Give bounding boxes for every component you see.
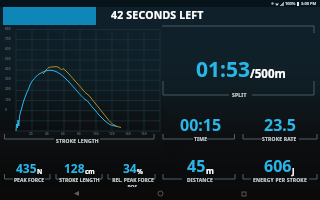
staticText: 800	[5, 27, 11, 31]
staticText: 140	[125, 132, 131, 136]
staticText: J	[292, 165, 295, 176]
staticText: 128	[64, 160, 85, 176]
button[interactable]: 01:53	[196, 55, 286, 84]
button[interactable]: 606	[243, 155, 316, 183]
staticText: STROKE LENGTH	[59, 177, 100, 184]
button[interactable]: 128	[56, 160, 102, 188]
staticText: ENERGY PER STROKE	[253, 177, 307, 184]
staticText: 606	[264, 155, 292, 177]
staticText: 3:00 PM	[301, 1, 317, 6]
staticText: 80	[77, 132, 81, 136]
staticText: m	[206, 165, 214, 176]
button[interactable]: Back	[70, 187, 83, 200]
staticText: DISTANCE	[187, 177, 214, 184]
staticText: 42 SECONDS LEFT	[111, 8, 204, 22]
staticText: 600	[5, 47, 11, 51]
staticText: 23.5	[264, 114, 296, 136]
staticText: 500	[5, 57, 11, 61]
button[interactable]: 435	[6, 160, 52, 188]
staticText: 120	[109, 132, 115, 136]
staticText: 435	[16, 160, 37, 176]
staticText: %	[137, 167, 143, 176]
staticText: SPLIT	[232, 92, 247, 99]
staticText: 60	[61, 132, 65, 136]
button[interactable]: 34	[108, 160, 157, 188]
staticText: 100	[93, 132, 99, 136]
staticText: N	[37, 167, 43, 176]
staticText: STROKE LENGTH	[56, 138, 99, 145]
button[interactable]: Home	[154, 187, 167, 200]
staticText: 34	[123, 160, 137, 176]
button[interactable]: Recents	[237, 187, 250, 200]
staticText: 100	[5, 98, 11, 102]
staticText: 01:53	[196, 55, 250, 84]
staticText: 20	[29, 132, 33, 136]
button[interactable]: 45	[168, 155, 233, 183]
staticText: cm	[85, 167, 95, 176]
staticText: 00:15	[180, 114, 222, 136]
staticText: 160	[141, 132, 147, 136]
staticText: /500m	[250, 66, 286, 82]
staticText: TIME	[194, 136, 208, 143]
staticText: PEAK FORCE	[14, 177, 44, 184]
button[interactable]: 23.5	[243, 114, 316, 142]
staticText: 300	[5, 77, 11, 81]
staticText: 200	[5, 87, 11, 91]
staticText: 400	[5, 67, 11, 71]
staticText: 700	[5, 37, 11, 41]
staticText: STROKE RATE	[262, 136, 297, 143]
staticText: 100%	[285, 1, 296, 6]
staticText: 45	[187, 155, 206, 177]
button[interactable]: 00:15	[168, 114, 233, 142]
staticText: 40	[45, 132, 49, 136]
staticText: REL. PEAK FORCE POS.	[112, 177, 154, 190]
staticText: 0	[5, 108, 7, 112]
